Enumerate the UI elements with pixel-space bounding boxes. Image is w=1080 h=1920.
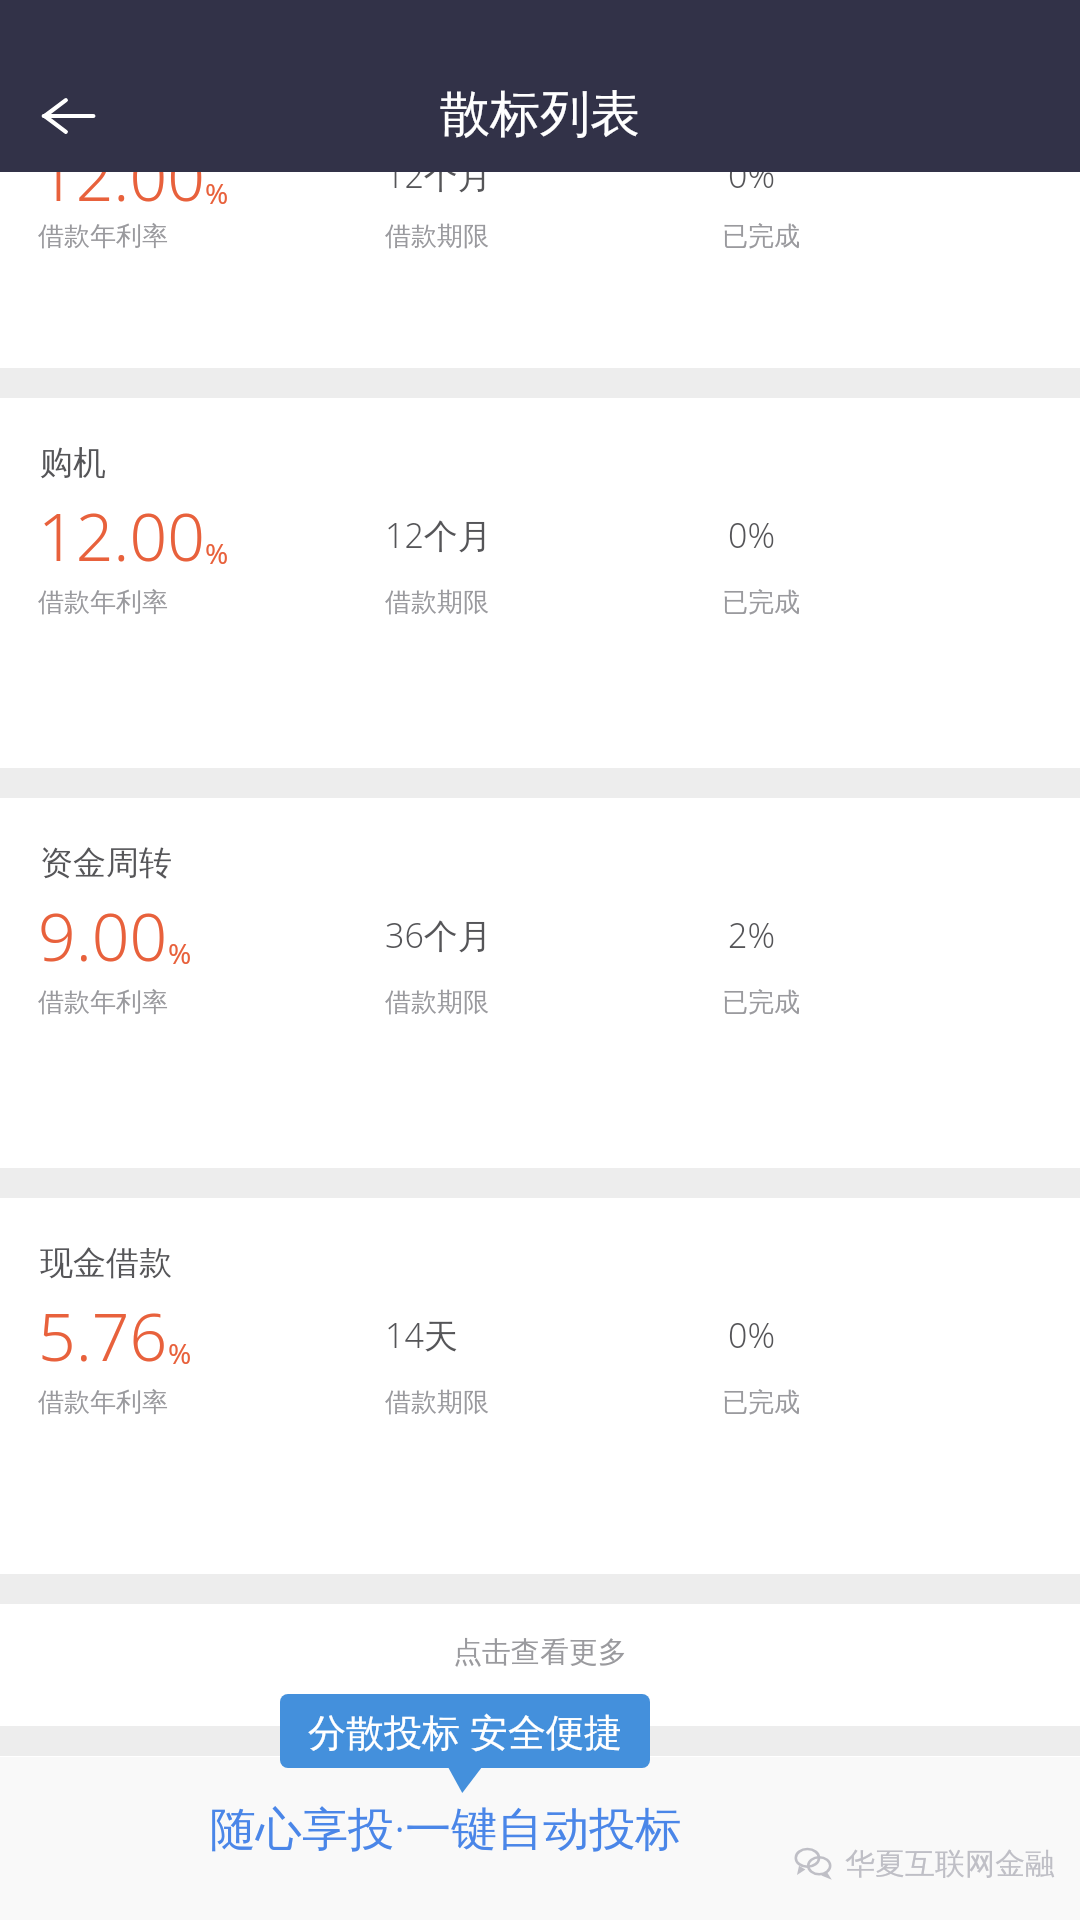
staticText: 已完成 [722, 986, 800, 1019]
staticText: 12.00 [38, 490, 205, 580]
staticText: 36个月 [385, 912, 492, 958]
button[interactable]: Back [28, 76, 108, 156]
staticText: % [168, 934, 192, 972]
staticText: 12个月 [385, 512, 492, 558]
staticText: 0% [728, 1312, 776, 1358]
staticText: 借款年利率 [38, 586, 168, 619]
staticText: 资金周转 [40, 842, 172, 884]
staticText: 已完成 [722, 586, 800, 619]
staticText: 借款期限 [385, 220, 489, 253]
staticText: 借款期限 [385, 1386, 489, 1419]
staticText: 购机 [40, 442, 106, 484]
staticText: 分散投标 安全便捷 [308, 1705, 622, 1757]
button[interactable]: 点击查看更多 [0, 1604, 1080, 1726]
staticText: 已完成 [722, 220, 800, 253]
button[interactable]: 12.00 [0, 172, 1080, 368]
staticText: % [168, 1334, 192, 1372]
staticText: 借款期限 [385, 586, 489, 619]
button[interactable]: 购机 [0, 398, 1080, 768]
staticText: 12.00 [38, 130, 205, 220]
staticText: 借款年利率 [38, 1386, 168, 1419]
staticText: 5.76 [38, 1290, 168, 1380]
staticText: 借款年利率 [38, 986, 168, 1019]
staticText: % [205, 174, 229, 212]
button[interactable]: 分散投标 安全便捷 [280, 1694, 650, 1768]
button[interactable]: 随心享投·一键自动投标 [210, 1796, 682, 1859]
button[interactable]: 现金借款 [0, 1198, 1080, 1568]
staticText: 0% [728, 152, 776, 198]
staticText: 散标列表 [440, 83, 640, 146]
button[interactable]: 资金周转 [0, 798, 1080, 1168]
staticText: 已完成 [722, 1386, 800, 1419]
staticText: 0% [728, 512, 776, 558]
staticText: 2% [728, 912, 776, 958]
staticText: 现金借款 [40, 1242, 172, 1284]
staticText: 12个月 [385, 152, 492, 198]
staticText: 华夏互联网金融 [845, 1845, 1055, 1883]
staticText: 点击查看更多 [453, 1634, 627, 1671]
staticText: 14天 [385, 1312, 458, 1358]
staticText: % [205, 534, 229, 572]
staticText: 借款期限 [385, 986, 489, 1019]
staticText: 9.00 [38, 890, 168, 980]
staticText: 借款年利率 [38, 220, 168, 253]
